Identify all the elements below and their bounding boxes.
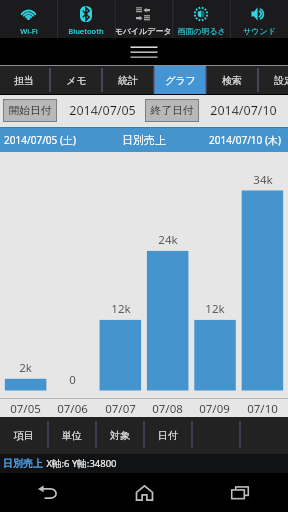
staticText: 設定 (274, 74, 288, 87)
button[interactable]: Home (96, 473, 192, 512)
staticText: 2014/07/10 (210, 102, 277, 119)
staticText: X軸:6 Y軸:34800 (46, 457, 117, 470)
button[interactable]: サウンド (230, 0, 288, 38)
staticText: 12k (111, 301, 131, 317)
button[interactable]: メモ (50, 66, 102, 94)
button[interactable]: 担当 (0, 66, 50, 94)
staticText: 対象 (110, 429, 130, 442)
staticText: 07/09 (199, 401, 230, 417)
button[interactable]: グラフ (154, 66, 206, 94)
staticText: 12k (205, 301, 225, 317)
button[interactable] (192, 417, 240, 454)
button[interactable]: 画面の明るさ (172, 0, 230, 38)
staticText: 07/10 (247, 401, 278, 417)
button[interactable]: Recent apps (192, 473, 288, 512)
staticText: 日別売上 (122, 133, 166, 147)
button[interactable]: モバイルデータ (114, 0, 172, 38)
button[interactable]: 終了日付 (145, 99, 199, 122)
button[interactable] (240, 417, 288, 454)
staticText: 07/06 (57, 401, 88, 417)
staticText: 統計 (118, 74, 138, 87)
staticText: Bluetooth (68, 26, 104, 36)
staticText: 2014/07/05 (土) (4, 133, 76, 147)
staticText: 担当 (14, 74, 34, 87)
staticText: 2k (19, 360, 32, 376)
staticText: モバイルデータ (114, 26, 172, 36)
staticText: 2014/07/10 (木) (209, 133, 281, 147)
button[interactable]: 統計 (102, 66, 154, 94)
staticText: 画面の明るさ (177, 26, 226, 36)
staticText: 検索 (222, 74, 242, 87)
button[interactable]: Wi-Fi (0, 0, 57, 38)
button[interactable]: 日付 (144, 417, 192, 454)
staticText: 日付 (158, 429, 178, 442)
staticText: 0 (69, 372, 76, 388)
staticText: 項目 (14, 429, 34, 442)
staticText: 34k (253, 172, 273, 188)
staticText: 07/05 (10, 401, 41, 417)
staticText: 24k (158, 232, 178, 248)
staticText: 2014/07/05 (69, 102, 136, 119)
staticText: グラフ (165, 74, 196, 87)
staticText: 終了日付 (150, 104, 194, 118)
button[interactable]: 対象 (96, 417, 144, 454)
staticText: サウンド (243, 26, 276, 36)
staticText: 日別売上 (3, 457, 43, 470)
staticText: 単位 (62, 429, 82, 442)
button[interactable]: Back (0, 473, 96, 512)
staticText: Wi-Fi (20, 26, 38, 36)
staticText: 07/07 (105, 401, 136, 417)
button[interactable]: 項目 (0, 417, 48, 454)
staticText: 07/08 (152, 401, 183, 417)
button[interactable]: 設定 (258, 66, 288, 94)
button[interactable]: 開始日付 (3, 99, 57, 122)
staticText: 開始日付 (8, 104, 52, 118)
button[interactable]: 検索 (206, 66, 258, 94)
staticText: メモ (66, 74, 87, 87)
button[interactable]: 単位 (48, 417, 96, 454)
button[interactable]: Bluetooth (57, 0, 114, 38)
